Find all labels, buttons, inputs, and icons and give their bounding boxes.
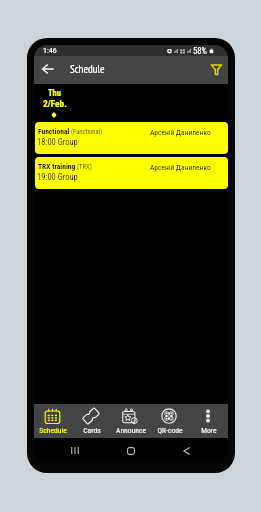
staticText: Арсеній Даниленко: [150, 163, 211, 172]
button[interactable]: Filter: [211, 64, 222, 75]
staticText: QR-code: [157, 426, 183, 435]
staticText: Cards: [83, 426, 101, 435]
staticText: 58%: [193, 46, 207, 56]
button[interactable]: Cards: [72, 404, 111, 438]
staticText: Арсеній Даниленко: [150, 128, 211, 137]
staticText: 1:46: [43, 46, 57, 55]
staticText: Thu: [48, 88, 61, 98]
button[interactable]: Announce: [111, 404, 150, 438]
staticText: TRX training: [38, 162, 76, 171]
button[interactable]: Schedule: [34, 404, 72, 438]
button[interactable]: Back: [42, 63, 54, 75]
staticText: (TRX): [77, 163, 92, 171]
staticText: (Functional): [71, 128, 103, 136]
button[interactable]: More: [189, 404, 228, 438]
staticText: Schedule: [70, 62, 105, 76]
staticText: More: [201, 426, 217, 435]
button[interactable]: Home: [127, 447, 135, 455]
staticText: Schedule: [39, 426, 67, 435]
staticText: 2/Feb.: [43, 98, 67, 109]
button[interactable]: Back: [183, 447, 190, 455]
button[interactable]: QR-code: [150, 404, 189, 438]
staticText: Functional: [38, 127, 70, 136]
staticText: 19:00 Group: [37, 172, 78, 182]
button[interactable]: Recents: [71, 447, 79, 454]
button[interactable]: TRX training: [35, 157, 228, 189]
staticText: Announce: [116, 426, 146, 435]
staticText: 18:00 Group: [37, 137, 78, 147]
button[interactable]: Functional: [35, 122, 228, 154]
